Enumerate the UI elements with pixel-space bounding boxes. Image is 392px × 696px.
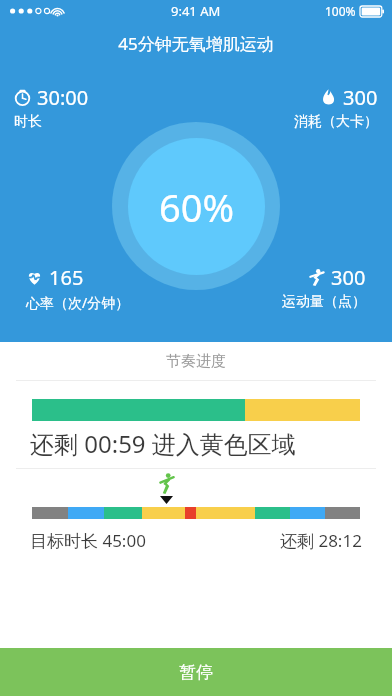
staticText: 30:00 [37,84,89,111]
staticText: 消耗（大卡） [294,113,378,131]
staticText: 还剩 00:59 进入黄色区域 [30,427,296,460]
staticText: 165 [49,264,84,291]
staticText: 节奏进度 [166,352,226,371]
staticText: 100% [325,3,356,19]
staticText: 45分钟无氧增肌运动 [118,32,274,55]
staticText: 9:41 AM [171,2,221,20]
staticText: 300 [343,84,378,111]
button[interactable]: 暂停 [0,648,392,696]
staticText: 还剩 28:12 [280,529,362,552]
staticText: 300 [331,264,366,291]
staticText: 运动量（点） [282,293,366,311]
staticText: 心率（次/分钟） [26,293,130,312]
staticText: 60% [159,181,235,233]
staticText: 目标时长 45:00 [30,529,146,552]
staticText: 时长 [14,113,42,131]
staticText: 暂停 [179,662,213,683]
other: Current position [158,473,175,494]
